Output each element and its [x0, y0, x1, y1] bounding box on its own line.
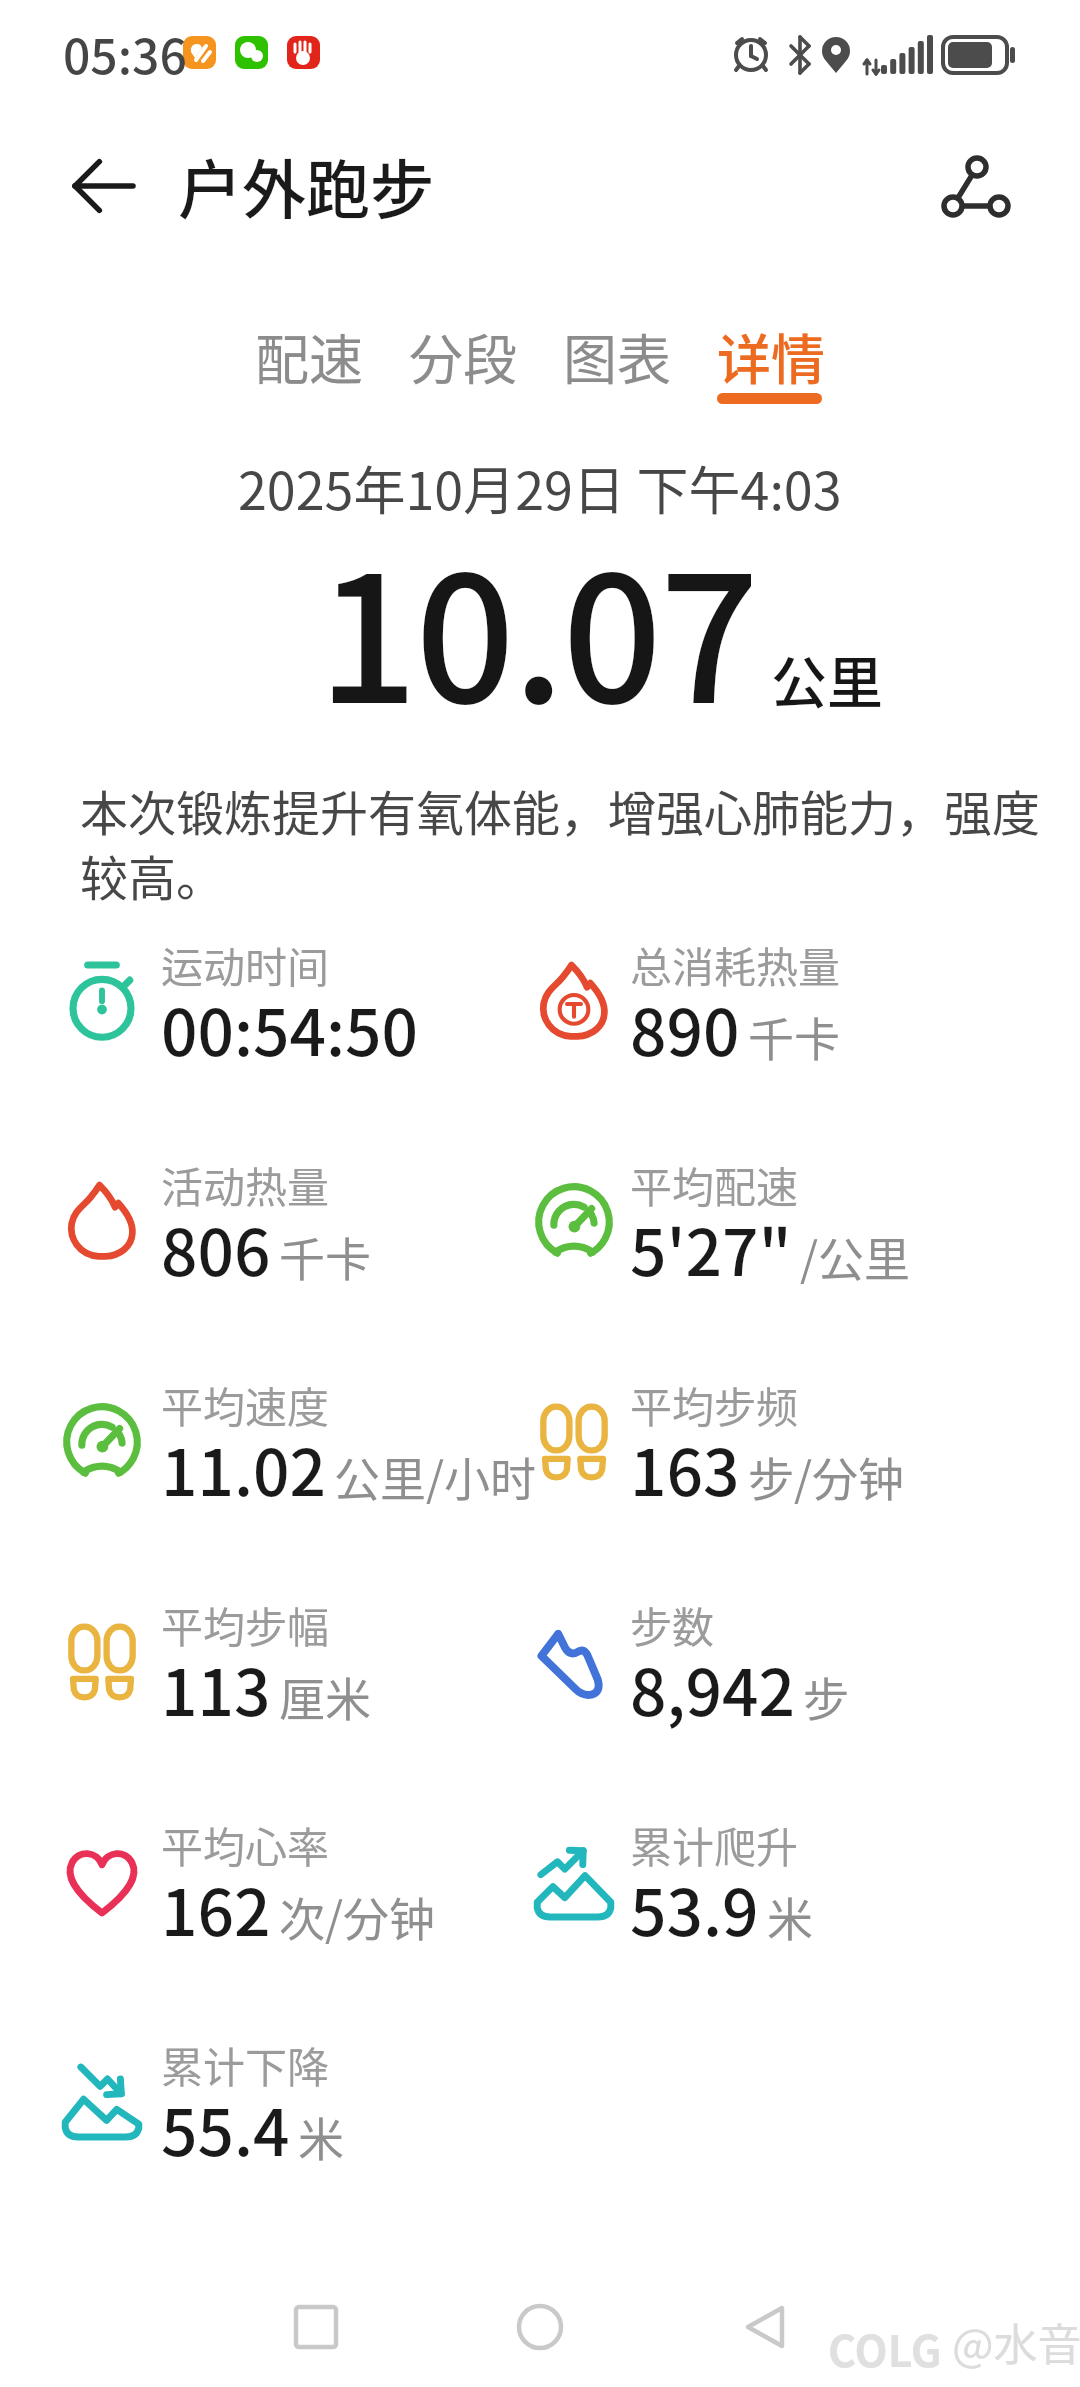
button[interactable] [720, 2290, 810, 2370]
staticText: 平均速度 [161, 1374, 330, 1435]
staticText: 53.9 [630, 1862, 759, 1955]
staticText: COLG [828, 2317, 942, 2379]
button[interactable] [60, 150, 150, 230]
button[interactable] [495, 2290, 585, 2370]
button[interactable] [930, 140, 1030, 230]
staticText: 8,942 [630, 1642, 795, 1735]
button[interactable] [270, 2290, 360, 2370]
staticText: 10.07 [318, 500, 757, 753]
staticText: 2025年10月29日 下午4:03 [238, 450, 842, 525]
staticText: 890 [630, 982, 740, 1075]
button[interactable]: 图表 [563, 317, 671, 395]
staticText: 运动时间 [161, 934, 330, 995]
staticText: /公里 [800, 1223, 911, 1290]
button[interactable]: 配速 [255, 317, 363, 395]
staticText: 累计下降 [161, 2034, 330, 2095]
staticText: 户外跑步 [178, 139, 434, 232]
staticText: 总消耗热量 [630, 934, 841, 995]
staticText: 55.4 [161, 2082, 290, 2175]
staticText: 00:54:50 [161, 982, 419, 1075]
staticText: 5'27" [630, 1202, 792, 1295]
staticText: 162 [161, 1862, 271, 1955]
button[interactable]: 详情 [717, 317, 825, 395]
staticText: 步/分钟 [748, 1443, 905, 1510]
staticText: 05:36 [63, 18, 187, 88]
staticText: 厘米 [279, 1663, 371, 1730]
staticText: 平均步频 [630, 1374, 799, 1435]
staticText: 步 [803, 1663, 849, 1730]
staticText: 千卡 [748, 1003, 840, 1070]
staticText: 较高。 [80, 840, 225, 910]
staticText: 次/分钟 [279, 1883, 436, 1950]
button[interactable]: 分段 [409, 317, 517, 395]
staticText: 平均配速 [630, 1154, 799, 1215]
staticText: 本次锻炼提升有氧体能，增强心肺能力，强度 [80, 775, 1041, 845]
staticText: 113 [161, 1642, 271, 1735]
staticText: 千卡 [279, 1223, 371, 1290]
staticText: 平均心率 [161, 1814, 330, 1875]
staticText: 累计爬升 [630, 1814, 799, 1875]
staticText: 公里/小时 [334, 1443, 537, 1510]
staticText: 163 [630, 1422, 740, 1515]
staticText: 米 [767, 1883, 813, 1950]
staticText: 平均步幅 [161, 1594, 330, 1655]
staticText: 步数 [630, 1594, 715, 1655]
staticText: @水音 [952, 2310, 1080, 2374]
staticText: 米 [298, 2103, 344, 2170]
staticText: 11.02 [161, 1422, 326, 1515]
staticText: 806 [161, 1202, 271, 1295]
staticText: 公里 [771, 638, 883, 719]
staticText: 活动热量 [161, 1154, 330, 1215]
